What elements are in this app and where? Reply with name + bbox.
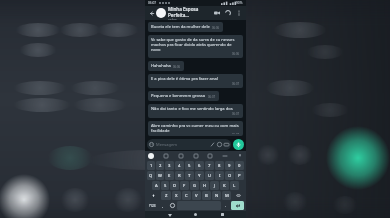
staticText: D [173, 183, 177, 189]
button[interactable]: Pequena e benmmm grossa [148, 91, 219, 101]
button[interactable]: L [230, 181, 239, 190]
button[interactable]: Backspace [232, 191, 244, 200]
button[interactable]: R [175, 171, 184, 180]
button[interactable]: Minha Esposa Perfeita... [168, 6, 213, 20]
button[interactable]: 4 [175, 161, 184, 170]
staticText: 06:06 [173, 65, 181, 69]
button[interactable]: G [190, 181, 199, 190]
staticText: , [162, 203, 164, 208]
button[interactable]: Q [147, 171, 155, 180]
button[interactable]: Voice input [237, 153, 243, 159]
button[interactable]: Recents [220, 212, 225, 217]
button[interactable]: P [235, 171, 244, 180]
button[interactable]: Call [224, 9, 232, 17]
button[interactable]: More options [235, 9, 243, 17]
button[interactable]: H [200, 181, 209, 190]
button[interactable]: Hahahaha [148, 61, 184, 71]
button[interactable]: V [192, 191, 201, 200]
staticText: Hahahaha [151, 63, 171, 69]
button[interactable]: Shift [147, 191, 160, 200]
button[interactable]: Y [195, 171, 204, 180]
button[interactable]: 0 [235, 161, 244, 170]
staticText: 7 [208, 163, 211, 169]
staticText: 06:07 [148, 1, 157, 5]
button[interactable]: Não doi tanto e fico me sentindo larga d… [148, 104, 243, 118]
staticText: 06:07 [232, 112, 240, 116]
button[interactable]: I [215, 171, 224, 180]
button[interactable]: K [220, 181, 229, 190]
staticText: Vc sabe que gosto de da surra de cu ness… [151, 37, 240, 52]
button[interactable]: Clipboard [207, 153, 213, 159]
button[interactable]: GIF [178, 153, 184, 159]
staticText: 06:07 [208, 95, 216, 99]
staticText: 90% [236, 1, 243, 5]
button[interactable]: Settings [193, 153, 199, 159]
staticText: E a pica dele é ótima pra fazer anal [151, 76, 218, 82]
button[interactable]: . [222, 201, 230, 210]
staticText: 9 [228, 163, 231, 169]
button[interactable]: Collapse [222, 153, 228, 159]
button[interactable]: 6 [195, 161, 204, 170]
button[interactable]: Back [148, 10, 155, 17]
staticText: 06:06 [232, 52, 240, 56]
staticText: V [195, 193, 198, 199]
button[interactable]: C [182, 191, 191, 200]
staticText: L [233, 183, 236, 189]
button[interactable]: Emoji [168, 201, 176, 210]
button[interactable]: Z [161, 191, 171, 200]
button[interactable]: 1 [147, 161, 155, 170]
button[interactable]: Voice message [233, 139, 244, 150]
button[interactable]: 3 [165, 161, 174, 170]
staticText: A [155, 183, 158, 189]
button[interactable]: B [202, 191, 211, 200]
staticText: T [188, 173, 191, 179]
button[interactable]: A [152, 181, 160, 190]
staticText: K [223, 183, 226, 189]
staticText: B [205, 193, 208, 199]
button[interactable]: Home [193, 212, 198, 217]
button[interactable]: ?123 [147, 201, 158, 210]
button[interactable]: Google [148, 153, 154, 159]
staticText: X [175, 193, 178, 199]
button[interactable]: W [156, 171, 164, 180]
staticText: Minha Esposa Perfeita... [168, 6, 213, 18]
staticText: M [225, 193, 229, 199]
button[interactable]: F [180, 181, 189, 190]
button[interactable]: Abre caminho pra vc cumer meu cu com mai… [148, 121, 243, 136]
button[interactable]: E [165, 171, 174, 180]
button[interactable]: D [170, 181, 179, 190]
button[interactable]: Video call [213, 9, 221, 17]
button[interactable]: 2 [156, 161, 164, 170]
staticText: N [215, 193, 219, 199]
staticText: Q [149, 173, 153, 179]
button[interactable]: Enter [231, 201, 244, 210]
staticText: Y [198, 173, 201, 179]
staticText: 5 [188, 163, 191, 169]
button[interactable]: Mensagem [147, 139, 231, 150]
staticText: 06:07 [232, 82, 240, 86]
button[interactable]: Vc sabe que gosto de da surra de cu ness… [148, 35, 243, 58]
button[interactable]: 9 [225, 161, 234, 170]
staticText: 6 [198, 163, 201, 169]
staticText: H [203, 183, 207, 189]
staticText: online [168, 18, 177, 20]
button[interactable]: Contact photo [156, 8, 166, 18]
button[interactable]: U [205, 171, 214, 180]
button[interactable]: Back [167, 212, 172, 217]
staticText: G [193, 183, 197, 189]
button[interactable]: N [212, 191, 221, 200]
button[interactable]: T [185, 171, 194, 180]
button[interactable]: E a pica dele é ótima pra fazer anal [148, 74, 243, 88]
button[interactable]: 8 [215, 161, 224, 170]
button[interactable]: M [222, 191, 231, 200]
button[interactable]: Buceta ele tem da mulher dele [148, 22, 223, 32]
button[interactable]: O [225, 171, 234, 180]
button[interactable]: X [172, 191, 181, 200]
button[interactable]: S [161, 181, 169, 190]
button[interactable]: J [210, 181, 219, 190]
button[interactable]: 7 [205, 161, 214, 170]
button[interactable]: , [159, 201, 167, 210]
button[interactable]: Stickers [163, 153, 169, 159]
button[interactable]: 5 [185, 161, 194, 170]
